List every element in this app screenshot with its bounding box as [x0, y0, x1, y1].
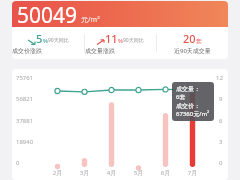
staticText: 20: [183, 31, 196, 46]
staticText: 90天同比: [123, 37, 144, 44]
button[interactable]: 5: [12, 31, 84, 55]
staticText: 7月: [179, 169, 206, 177]
staticText: 套: [196, 37, 202, 45]
staticText: 成交价涨跌: [12, 47, 84, 55]
staticText: 成交量涨跌: [85, 47, 156, 55]
staticText: 成交价：: [176, 102, 200, 110]
staticText: 成交量：: [176, 85, 200, 93]
staticText: %: [43, 37, 48, 45]
staticText: 6月: [152, 169, 179, 177]
staticText: 3: [219, 138, 223, 146]
button[interactable]: 11: [85, 31, 156, 55]
staticText: 56821: [16, 95, 34, 103]
staticText: 6套: [176, 93, 186, 101]
staticText: %: [118, 37, 123, 45]
staticText: 75761: [16, 74, 34, 82]
other: 成交详情: [176, 85, 210, 118]
staticText: 18940: [16, 138, 34, 146]
staticText: 3月: [71, 169, 98, 177]
staticText: 11: [105, 31, 118, 46]
staticText: 12: [216, 74, 223, 82]
staticText: 0: [16, 159, 20, 167]
staticText: 5月: [125, 169, 152, 177]
staticText: 50049: [17, 1, 78, 27]
button[interactable]: 20: [157, 31, 228, 55]
staticText: 0: [219, 159, 223, 167]
button[interactable]: 50049: [12, 1, 228, 27]
button[interactable]: 75761: [12, 69, 228, 180]
staticText: 37881: [16, 117, 34, 125]
staticText: 6: [219, 117, 223, 125]
staticText: 9: [219, 95, 223, 103]
staticText: 5: [36, 31, 43, 46]
staticText: 4月: [98, 169, 125, 177]
staticText: 元/m²: [81, 15, 100, 25]
staticText: 近90天成交量: [174, 47, 211, 55]
staticText: 90天同比: [48, 37, 69, 44]
staticText: 67360元/m²: [176, 110, 210, 118]
staticText: 2月: [44, 169, 71, 177]
